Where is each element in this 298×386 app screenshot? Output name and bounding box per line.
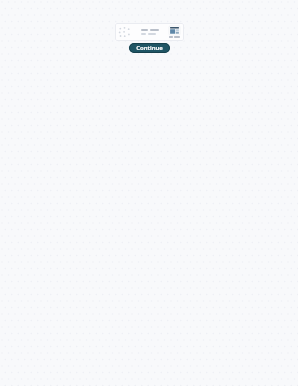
button[interactable] <box>115 23 184 41</box>
staticText: Continue <box>136 44 163 52</box>
button[interactable]: Continue <box>129 43 170 53</box>
